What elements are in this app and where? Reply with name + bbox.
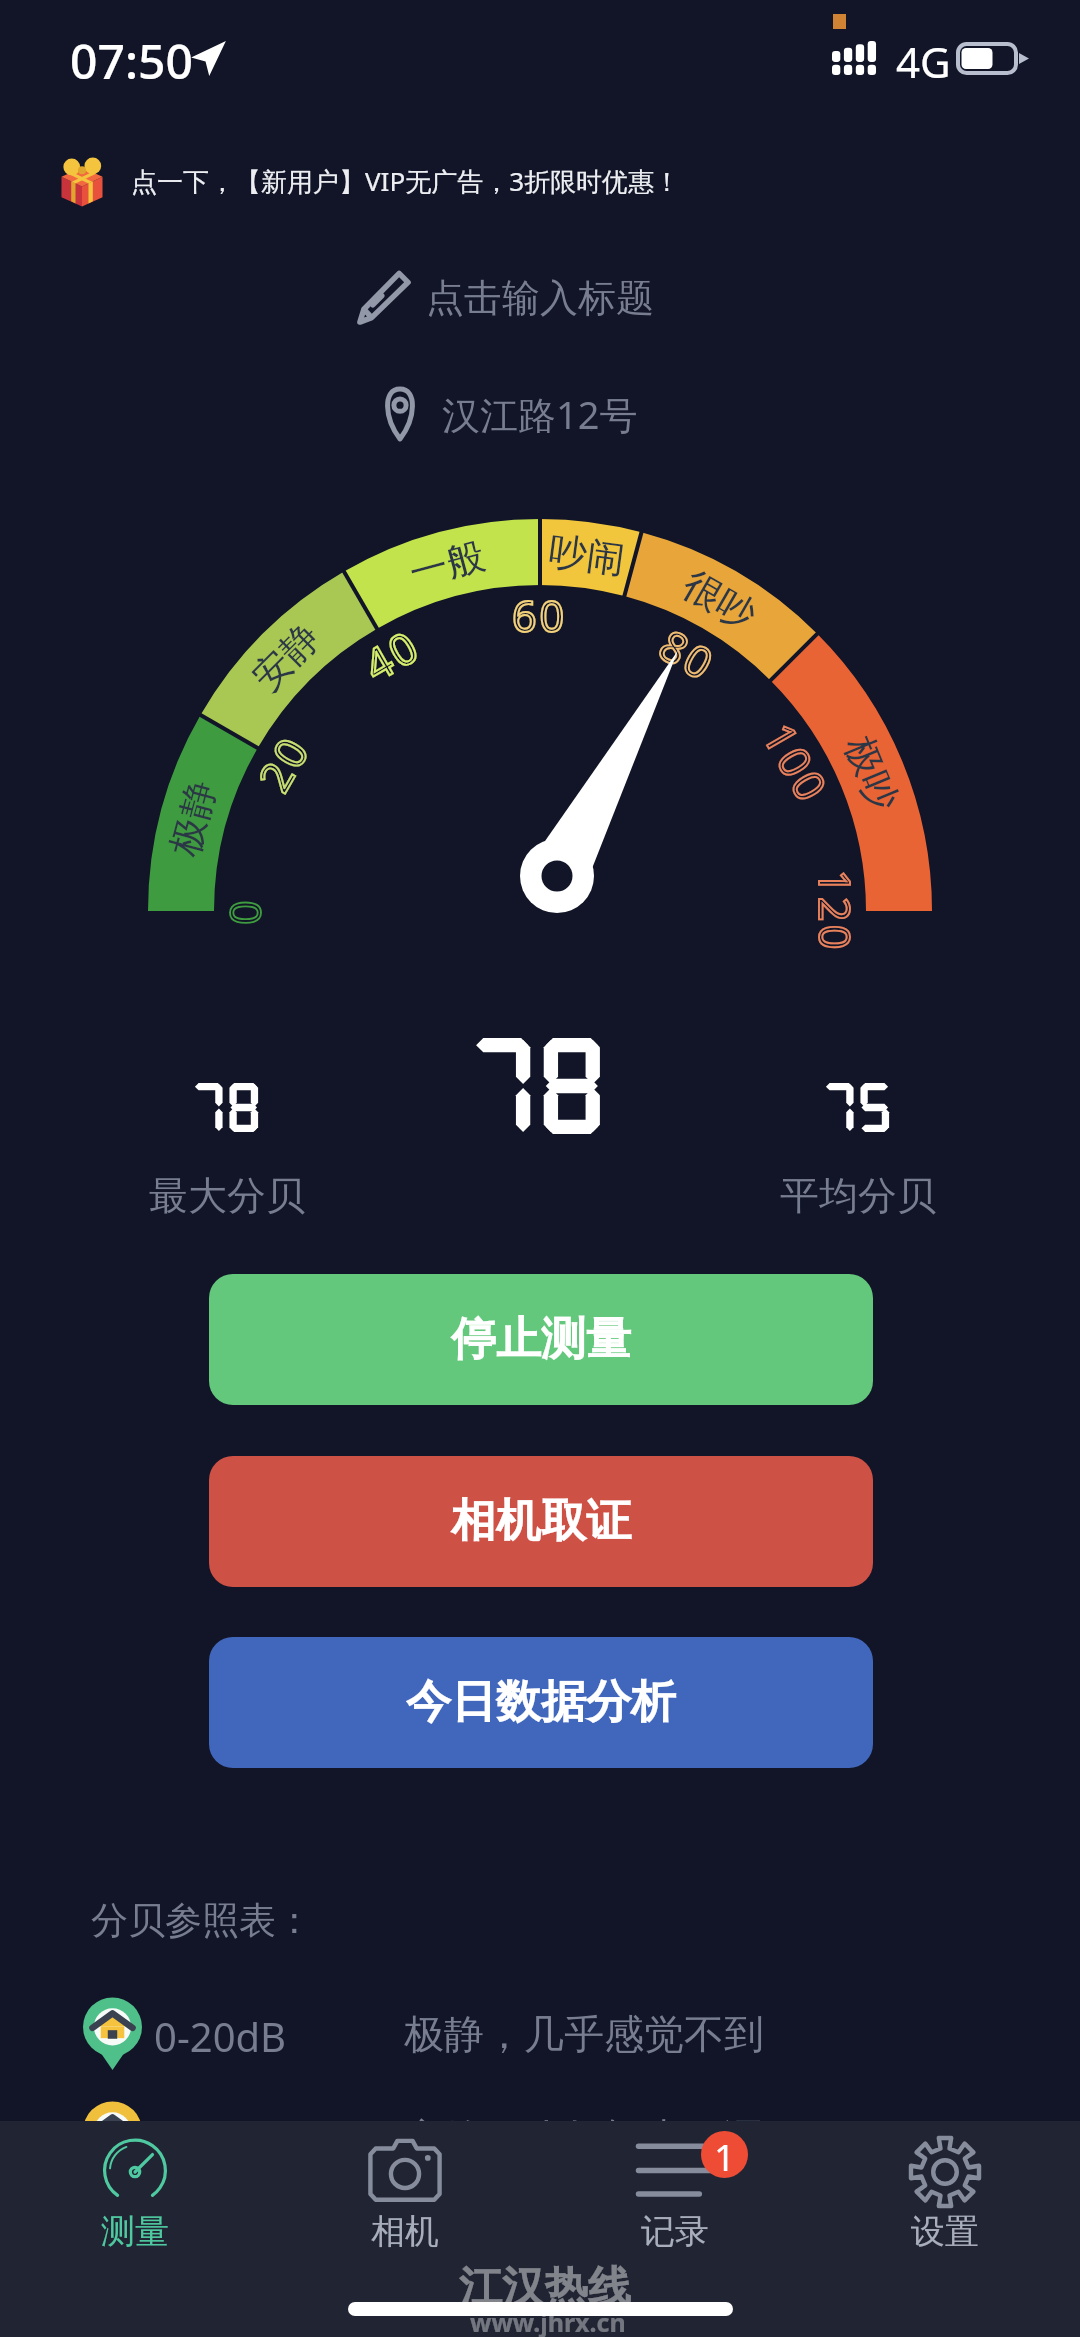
button[interactable]: Records [540, 2121, 810, 2253]
button[interactable]: 点一下，【新用户】VIP无广告，3折限时优惠！ [0, 150, 1080, 212]
button[interactable]: 点击输入标题 [330, 262, 750, 334]
staticText: 1 [714, 2131, 736, 2178]
staticText: 分贝参照表： [91, 1897, 313, 1944]
button[interactable]: 汉江路12号 [330, 380, 750, 448]
button[interactable]: Settings [810, 2121, 1080, 2253]
button[interactable]: 今日数据分析 [209, 1637, 873, 1768]
staticText: 停止测量 [451, 1311, 631, 1368]
staticText: 最大分贝 [149, 1171, 305, 1220]
staticText: 今日数据分析 [406, 1674, 676, 1731]
staticText: www.jhrx.cn [470, 2305, 626, 2337]
staticText: 测量 [101, 2210, 169, 2253]
staticText: 记录 [641, 2210, 709, 2253]
staticText: 07:50 [70, 28, 193, 93]
button[interactable]: 相机取证 [209, 1456, 873, 1587]
staticText: 20-40dB [154, 2113, 309, 2167]
staticText: 0-20dB [154, 2009, 287, 2063]
staticText: 安静，犹如轻声耳语 [404, 2113, 764, 2163]
button[interactable]: Measure [0, 2121, 270, 2253]
button[interactable]: 停止测量 [209, 1274, 873, 1405]
staticText: 相机 [371, 2210, 439, 2253]
staticText: 相机取证 [451, 1493, 631, 1550]
staticText: 设置 [911, 2210, 979, 2253]
staticText: 平均分贝 [780, 1171, 936, 1220]
staticText: 汉江路12号 [442, 388, 638, 440]
button[interactable]: Camera [270, 2121, 540, 2253]
staticText: 点一下，【新用户】VIP无广告，3折限时优惠！ [131, 163, 681, 199]
staticText: 点击输入标题 [426, 274, 654, 322]
staticText: 极静，几乎感觉不到 [404, 2009, 764, 2059]
staticText: 江汉热线 [459, 2261, 631, 2315]
staticText: 4G [896, 33, 951, 90]
